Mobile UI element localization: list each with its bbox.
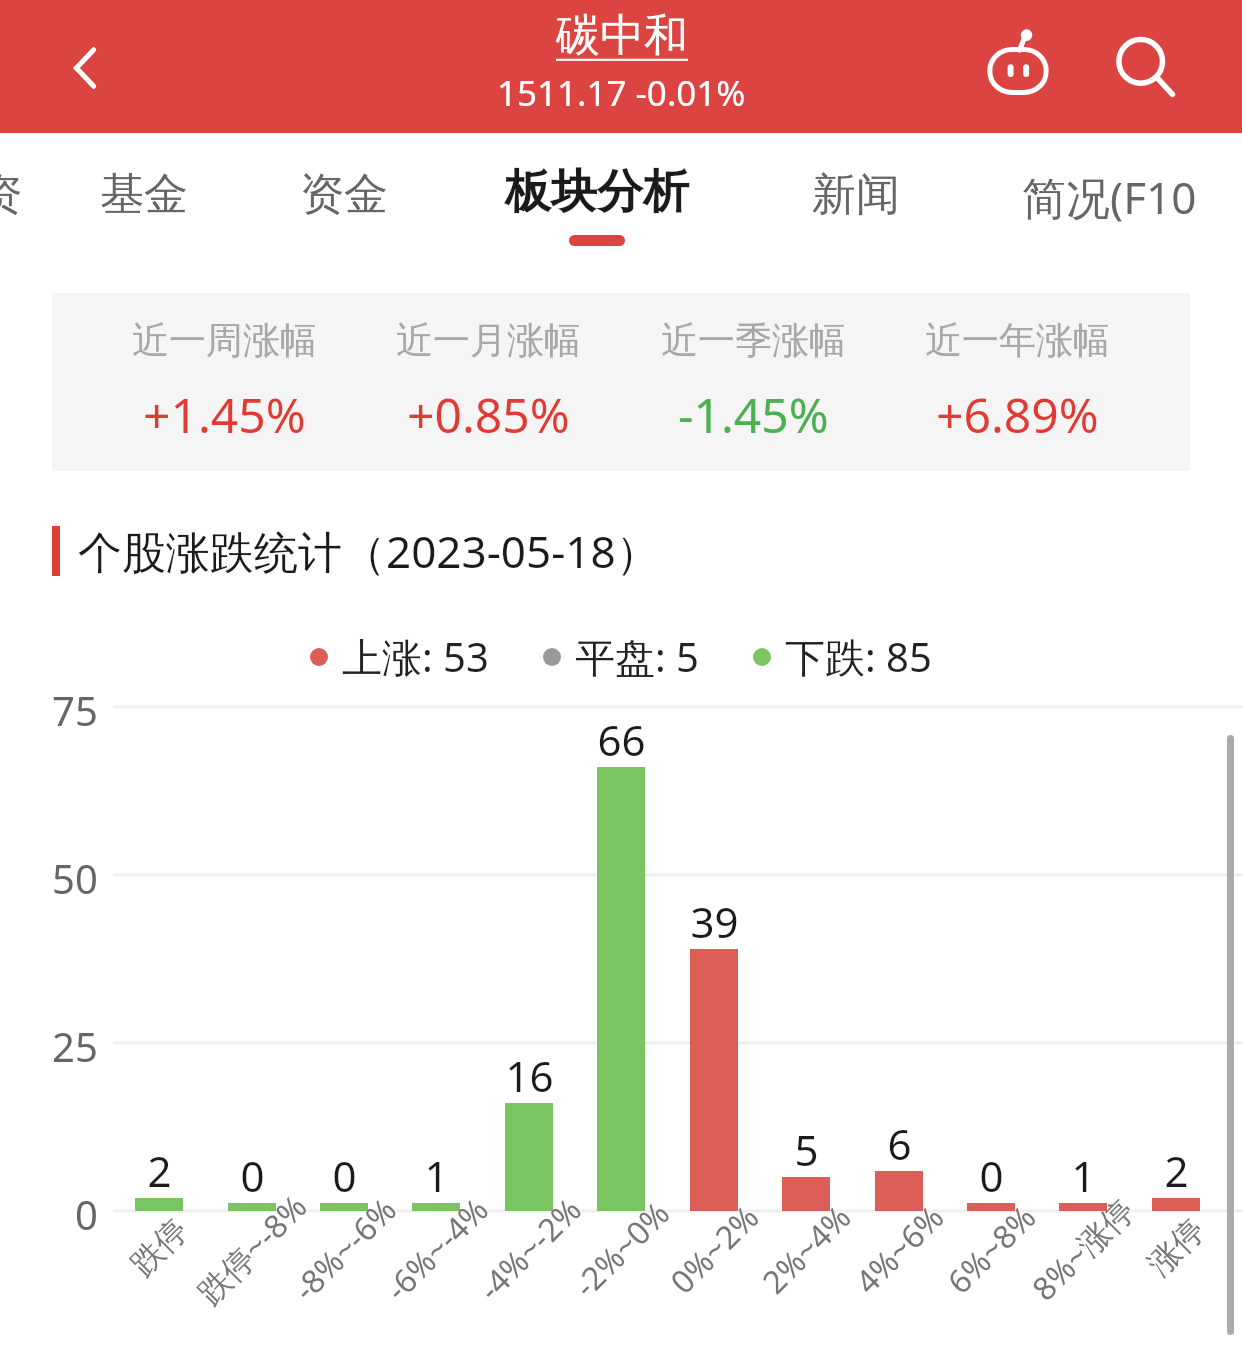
- staticText: 资: [0, 167, 22, 222]
- button[interactable]: 板块分析: [505, 163, 689, 246]
- staticText: 碳中和: [556, 8, 688, 63]
- staticText: +6.89%: [936, 382, 1099, 447]
- staticText: -6%~-4%: [375, 1188, 498, 1310]
- staticText: 0%~2%: [660, 1195, 769, 1303]
- button[interactable]: 近一年涨幅: [925, 317, 1110, 447]
- staticText: 涨停: [1139, 1210, 1213, 1284]
- staticText: 平盘: 5: [575, 629, 699, 684]
- staticText: 跌停~-8%: [188, 1185, 316, 1313]
- button[interactable]: 上涨: 53: [310, 629, 489, 684]
- button[interactable]: 平盘: 5: [543, 629, 699, 684]
- staticText: 50: [52, 851, 98, 905]
- staticText: 1: [1071, 1147, 1096, 1204]
- staticText: 66: [597, 711, 646, 768]
- staticText: 下跌: 85: [785, 629, 932, 684]
- staticText: 4%~6%: [845, 1195, 954, 1303]
- staticText: +0.85%: [407, 382, 570, 447]
- staticText: 25: [52, 1019, 98, 1073]
- staticText: 75: [52, 683, 98, 737]
- staticText: 1511.17 -0.01%: [497, 69, 746, 117]
- staticText: 6%~8%: [937, 1195, 1046, 1303]
- staticText: 个股涨跌统计（2023-05-18）: [78, 521, 660, 581]
- staticText: 2: [147, 1142, 172, 1199]
- staticText: -1.45%: [678, 382, 829, 447]
- button[interactable]: Search: [1100, 22, 1192, 114]
- staticText: 基金: [100, 167, 188, 222]
- staticText: 近一周涨幅: [132, 317, 317, 364]
- staticText: 0: [332, 1147, 357, 1204]
- staticText: 1: [424, 1147, 449, 1204]
- staticText: 新闻: [812, 167, 900, 222]
- staticText: 简况(F10: [1022, 167, 1197, 227]
- button[interactable]: Assistant: [972, 22, 1064, 114]
- staticText: 39: [690, 893, 739, 950]
- button[interactable]: 简况(F10: [1022, 167, 1197, 227]
- staticText: 0: [979, 1147, 1004, 1204]
- staticText: 板块分析: [505, 163, 689, 221]
- staticText: 跌停: [122, 1210, 196, 1284]
- staticText: 资金: [300, 167, 388, 222]
- button[interactable]: 资金: [300, 167, 388, 222]
- staticText: 上涨: 53: [342, 629, 489, 684]
- button[interactable]: 近一季涨幅: [661, 317, 846, 447]
- staticText: 2%~4%: [752, 1195, 861, 1303]
- button[interactable]: Back: [46, 28, 126, 108]
- staticText: 0: [75, 1187, 98, 1241]
- staticText: 5: [794, 1121, 819, 1178]
- button[interactable]: 新闻: [812, 167, 900, 222]
- button[interactable]: 资: [0, 167, 22, 222]
- staticText: -2%~0%: [564, 1191, 679, 1307]
- staticText: 16: [505, 1047, 554, 1104]
- button[interactable]: 近一周涨幅: [132, 317, 317, 447]
- staticText: 近一年涨幅: [925, 317, 1110, 364]
- staticText: 近一季涨幅: [661, 317, 846, 364]
- staticText: 0: [240, 1147, 265, 1204]
- staticText: -4%~-2%: [468, 1188, 591, 1310]
- staticText: 近一月涨幅: [396, 317, 581, 364]
- button[interactable]: 基金: [100, 167, 188, 222]
- staticText: 6: [887, 1115, 912, 1172]
- staticText: 8%~涨停: [1022, 1188, 1144, 1310]
- button[interactable]: 近一月涨幅: [396, 317, 581, 447]
- staticText: +1.45%: [143, 382, 306, 447]
- button[interactable]: 下跌: 85: [753, 629, 932, 684]
- staticText: 2: [1164, 1142, 1189, 1199]
- staticText: -8%~-6%: [283, 1188, 406, 1310]
